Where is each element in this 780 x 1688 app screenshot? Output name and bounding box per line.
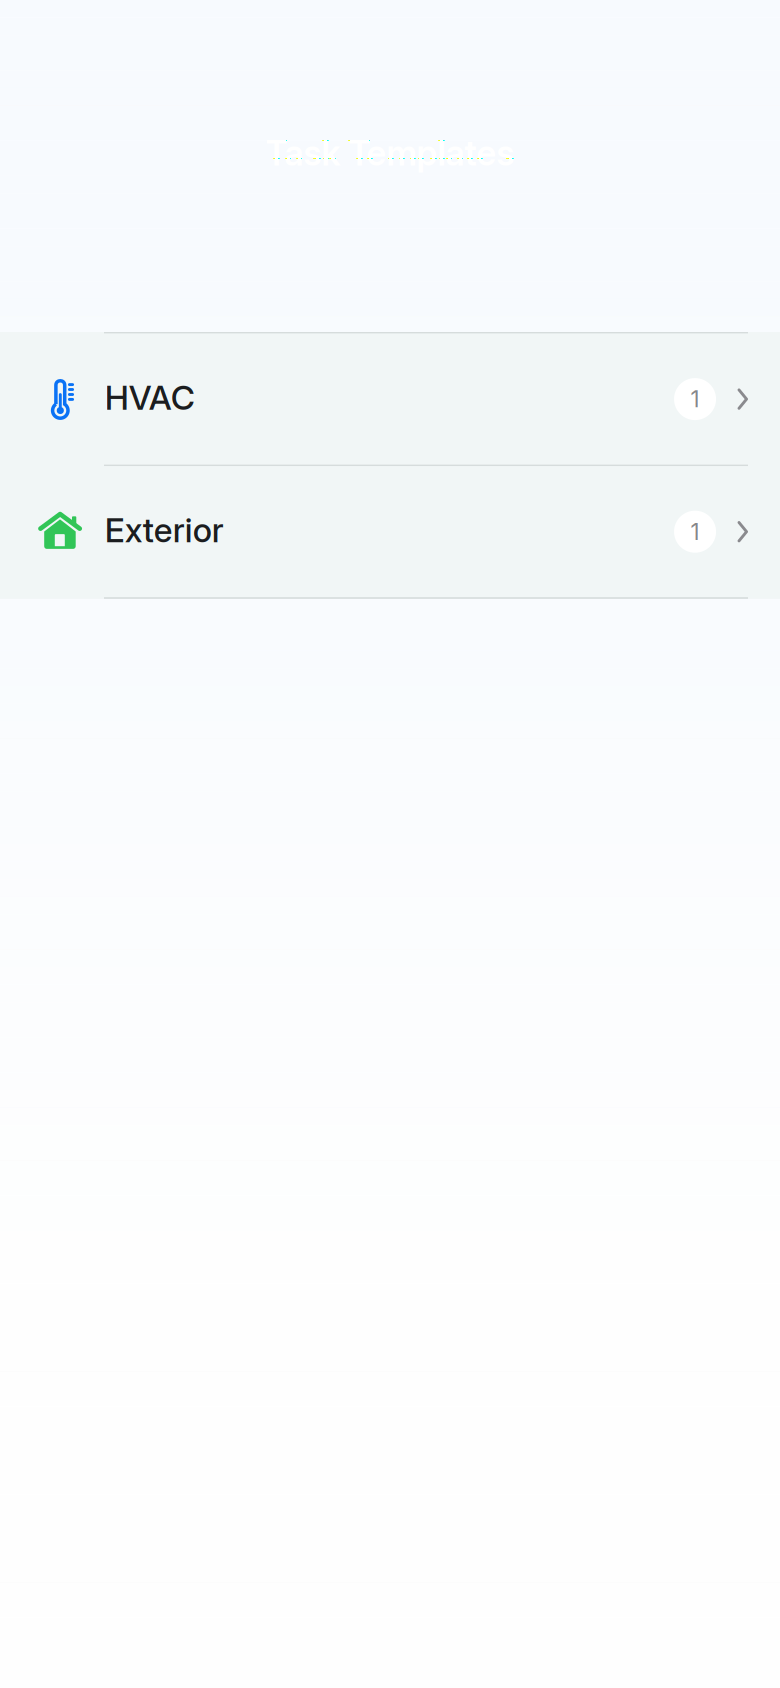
staticText: Task Templates bbox=[265, 132, 514, 174]
staticText: HVAC bbox=[105, 377, 195, 418]
button[interactable]: 1 bbox=[0, 466, 780, 599]
staticText: 1 bbox=[690, 518, 699, 545]
staticText: Exterior bbox=[105, 510, 224, 550]
staticText: 1 bbox=[690, 385, 699, 413]
button[interactable]: 1 bbox=[0, 334, 780, 466]
